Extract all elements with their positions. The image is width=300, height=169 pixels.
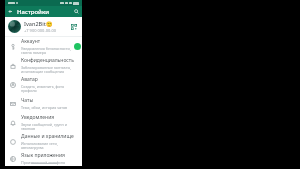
staticText: Звуки сообщений, групп и звонков <box>21 122 67 132</box>
staticText: Данные и хранилище <box>21 133 74 140</box>
button[interactable]: Конфиденциальность <box>5 56 82 75</box>
button[interactable]: QR-код <box>69 22 79 32</box>
staticText: Аватар <box>21 76 38 83</box>
staticText: Чаты <box>21 97 34 104</box>
button[interactable]: Ivan2Bit🙂 <box>5 17 82 36</box>
staticText: Уведомления безопасности, смена номера <box>21 46 71 56</box>
staticText: +7 900 000-00-00 <box>24 28 57 33</box>
button[interactable]: Аккаунт <box>5 37 82 56</box>
staticText: Заблокированные контакты, исчезающие соо… <box>21 65 72 75</box>
button[interactable]: Аватар <box>5 75 82 94</box>
staticText: Настройки <box>17 8 50 16</box>
button[interactable]: Язык приложения <box>5 151 82 166</box>
button[interactable]: Назад <box>6 7 15 16</box>
staticText: Использование сети, автозагрузка <box>21 141 58 151</box>
staticText: Создать, изменить, фото профиля <box>21 84 65 94</box>
staticText: Язык приложения <box>21 152 65 159</box>
staticText: Ivan2Bit🙂 <box>24 20 53 27</box>
button[interactable]: Поиск <box>71 6 82 17</box>
staticText: Конфиденциальность <box>21 57 74 64</box>
button[interactable]: Данные и хранилище <box>5 132 82 151</box>
staticText: Тема, обои, история чатов <box>21 105 68 110</box>
button[interactable]: Уведомления <box>5 113 82 132</box>
staticText: Аккаунт <box>21 38 41 45</box>
staticText: Уведомления <box>21 114 55 121</box>
staticText: Произвольный телефона <box>21 160 65 165</box>
button[interactable]: Чаты <box>5 94 82 113</box>
